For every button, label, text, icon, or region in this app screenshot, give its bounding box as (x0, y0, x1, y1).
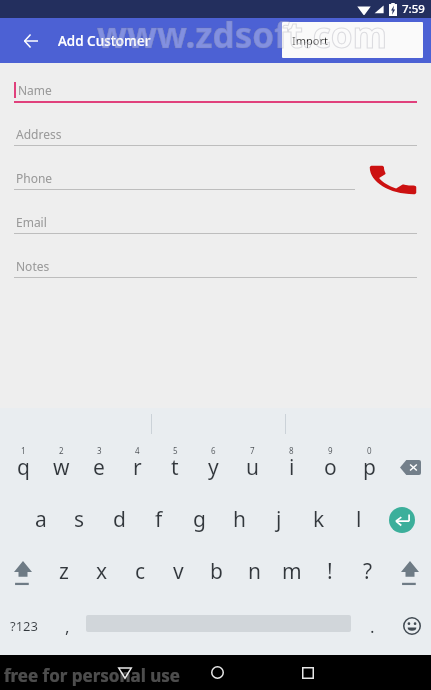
staticText: e (93, 453, 105, 482)
staticText: g (193, 505, 206, 534)
button[interactable]: Email (14, 201, 417, 245)
button[interactable]: Backspace (389, 441, 431, 493)
button[interactable]: Address (14, 113, 417, 157)
staticText: w (53, 453, 70, 482)
staticText: 7:59 (402, 1, 425, 17)
button[interactable]: 4 (118, 441, 156, 493)
staticText: , (65, 615, 70, 638)
button[interactable]: 1 (4, 441, 42, 493)
staticText: f (155, 505, 163, 534)
button[interactable]: 5 (156, 441, 194, 493)
button[interactable]: Phone (14, 157, 417, 201)
button[interactable]: Shift (387, 546, 431, 597)
button[interactable]: 2 (42, 441, 80, 493)
staticText: 6 (211, 445, 216, 456)
button[interactable]: Home (195, 655, 239, 690)
staticText: 0 (367, 445, 372, 456)
staticText: s (74, 505, 85, 534)
staticText: y (208, 453, 219, 482)
staticText: Name (18, 82, 52, 98)
staticText: 7 (250, 445, 255, 456)
staticText: i (289, 453, 295, 482)
staticText: Import (292, 33, 328, 48)
staticText: 1 (21, 445, 26, 456)
button[interactable]: Recents (286, 655, 330, 690)
staticText: . (370, 615, 375, 638)
button[interactable]: 3 (80, 441, 118, 493)
button[interactable]: 7 (233, 441, 272, 493)
button[interactable]: v (159, 546, 197, 597)
button[interactable]: 9 (311, 441, 350, 493)
staticText: ?123 (10, 617, 38, 635)
staticText: a (35, 505, 47, 534)
staticText: Phone (16, 170, 53, 186)
button[interactable]: ! (311, 546, 349, 597)
staticText: free for personal use (4, 664, 180, 687)
staticText: 3 (97, 445, 102, 456)
button[interactable]: n (235, 546, 273, 597)
button[interactable]: j (259, 493, 299, 546)
button[interactable]: a (21, 493, 60, 546)
staticText: Email (16, 214, 47, 230)
button[interactable]: 6 (194, 441, 233, 493)
staticText: Add Customer (58, 32, 151, 50)
staticText: d (113, 505, 126, 534)
button[interactable]: Emoji (393, 597, 431, 655)
staticText: j (276, 505, 282, 534)
staticText: m (282, 557, 302, 586)
staticText: t (171, 453, 179, 482)
button[interactable]: c (121, 546, 159, 597)
button[interactable]: Enter (379, 493, 431, 546)
button[interactable]: . (351, 597, 393, 655)
button[interactable]: s (60, 493, 99, 546)
staticText: u (246, 453, 259, 482)
button[interactable]: l (339, 493, 379, 546)
staticText: r (133, 453, 142, 482)
staticText: c (135, 557, 146, 586)
staticText: q (17, 453, 30, 482)
staticText: ! (327, 557, 333, 586)
button[interactable]: ? (349, 546, 387, 597)
staticText: ? (363, 557, 373, 586)
staticText: 8 (289, 445, 294, 456)
staticText: 2 (59, 445, 64, 456)
button[interactable]: 0 (350, 441, 389, 493)
staticText: 9 (328, 445, 333, 456)
staticText: l (356, 505, 362, 534)
button[interactable]: Back (103, 655, 147, 690)
button[interactable]: m (273, 546, 311, 597)
button[interactable]: Shift (0, 546, 44, 597)
staticText: b (210, 557, 223, 586)
staticText: Notes (16, 258, 50, 274)
staticText: Address (16, 126, 62, 142)
button[interactable]: Back (8, 18, 53, 63)
staticText: www.zdsoft.com (97, 11, 387, 59)
button[interactable]: d (99, 493, 139, 546)
button[interactable]: k (299, 493, 339, 546)
staticText: k (313, 505, 325, 534)
button[interactable]: Import (282, 22, 423, 58)
button[interactable]: Notes (14, 245, 417, 289)
staticText: www.zdsoft.com (97, 11, 387, 59)
staticText: x (96, 557, 108, 586)
button[interactable]: x (83, 546, 121, 597)
button[interactable]: ?123 (0, 597, 48, 655)
staticText: n (248, 557, 261, 586)
staticText: h (233, 505, 246, 534)
button[interactable]: z (44, 546, 83, 597)
button[interactable]: g (179, 493, 219, 546)
button[interactable]: , (48, 597, 86, 655)
staticText: p (363, 453, 376, 482)
button[interactable]: f (139, 493, 179, 546)
staticText: v (173, 557, 184, 586)
button[interactable]: h (219, 493, 259, 546)
staticText: 5 (173, 445, 178, 456)
button[interactable]: b (197, 546, 235, 597)
button[interactable]: 8 (272, 441, 311, 493)
button[interactable]: Space (86, 597, 351, 655)
staticText: o (324, 453, 337, 482)
staticText: 4 (135, 445, 140, 456)
button[interactable]: Name (14, 69, 417, 113)
staticText: z (59, 557, 69, 586)
